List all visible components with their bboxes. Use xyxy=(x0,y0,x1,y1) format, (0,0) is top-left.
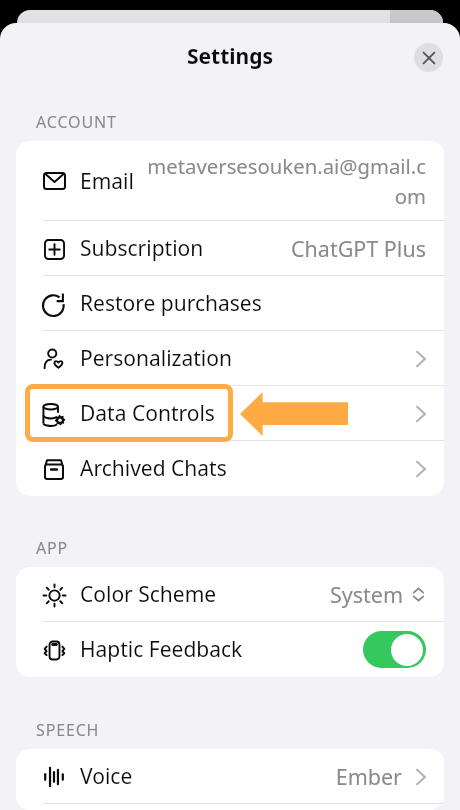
staticText: Data Controls xyxy=(80,399,215,428)
staticText: Personalization xyxy=(80,344,232,373)
staticText: ChatGPT Plus xyxy=(290,234,426,263)
staticText: Archived Chats xyxy=(80,454,227,483)
button[interactable]: Subscription xyxy=(16,221,444,276)
staticText: SPEECH xyxy=(36,719,100,741)
staticText: Color Scheme xyxy=(80,580,217,609)
staticText: Restore purchases xyxy=(80,289,262,318)
staticText: Subscription xyxy=(80,234,204,263)
button[interactable]: Close xyxy=(414,43,443,72)
staticText: metaversesouken.ai@gmail.c xyxy=(147,152,426,180)
staticText: Email xyxy=(80,167,134,196)
button[interactable]: Color Scheme xyxy=(16,567,444,622)
staticText: Haptic Feedback xyxy=(80,635,243,664)
staticText: ACCOUNT xyxy=(36,111,117,133)
button[interactable]: Archived Chats xyxy=(16,441,444,496)
button[interactable]: Voice xyxy=(16,749,444,804)
staticText: System xyxy=(329,580,403,609)
staticText: Ember xyxy=(335,762,402,791)
staticText: APP xyxy=(36,537,69,559)
button[interactable]: Personalization xyxy=(16,331,444,386)
button[interactable]: Haptic Feedback toggle xyxy=(363,631,426,668)
button[interactable]: Restore purchases xyxy=(16,276,444,331)
staticText: Settings xyxy=(187,42,274,71)
staticText: om xyxy=(394,182,426,210)
button[interactable]: Email xyxy=(16,141,444,221)
button[interactable]: Data Controls xyxy=(16,386,444,441)
button[interactable]: Haptic Feedback xyxy=(16,622,444,677)
staticText: Voice xyxy=(80,762,133,791)
